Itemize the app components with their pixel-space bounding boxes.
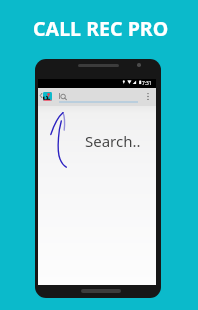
button[interactable]: Call Rec Pro (43, 92, 52, 101)
staticText: CALL REC PRO (33, 15, 169, 42)
staticText: Search.. (85, 131, 141, 151)
button[interactable]: More options (145, 91, 151, 101)
button[interactable]: Back (40, 93, 42, 98)
staticText: 7:31 (142, 80, 152, 87)
